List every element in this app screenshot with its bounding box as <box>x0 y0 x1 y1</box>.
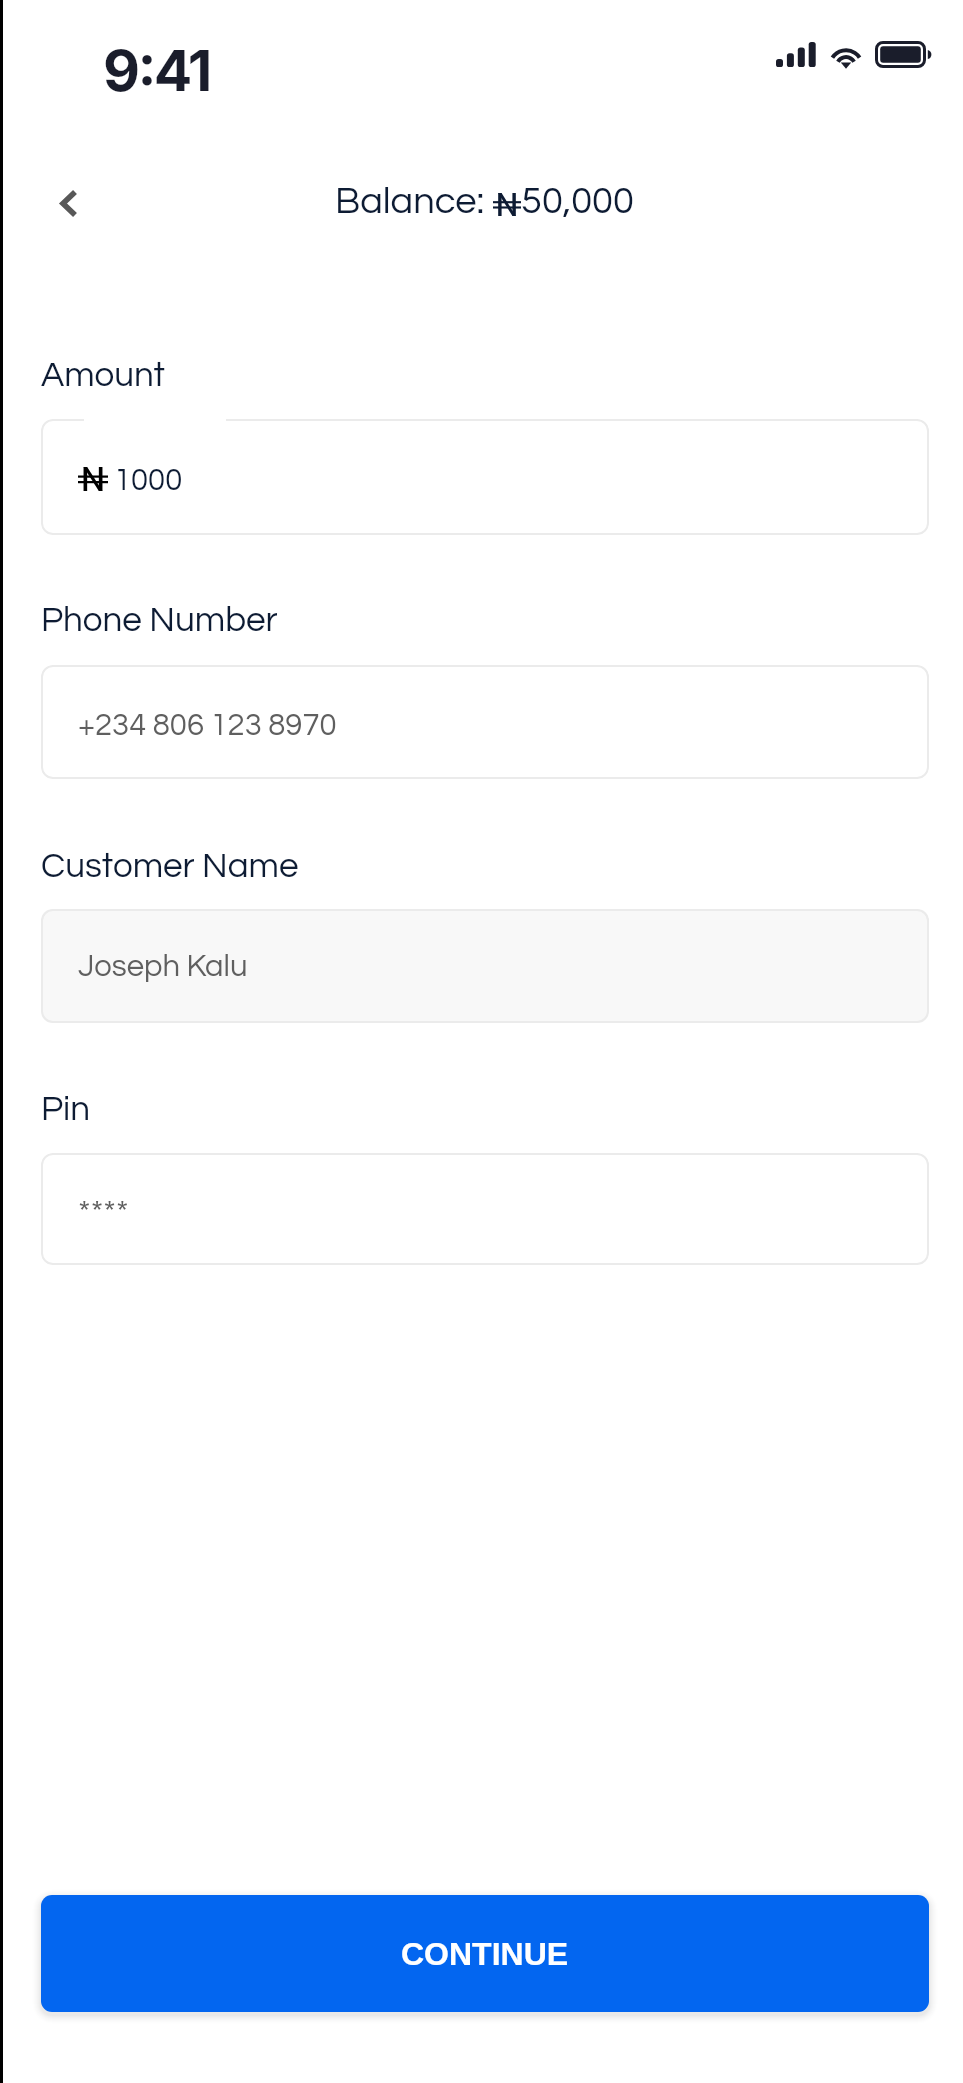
staticText: 1000 <box>114 465 183 497</box>
staticText: CONTINUE <box>401 1936 569 1972</box>
staticText: Balance: <box>335 182 493 221</box>
staticText: Joseph Kalu <box>78 951 248 983</box>
staticText: **** <box>78 1195 129 1230</box>
button[interactable]: **** <box>41 1153 929 1265</box>
staticText: Pin <box>41 1091 90 1127</box>
button[interactable]: +234 806 123 8970 <box>41 665 929 779</box>
staticText: Customer Name <box>41 848 299 884</box>
button[interactable]: 1000 <box>41 419 929 535</box>
button[interactable]: CONTINUE <box>41 1895 929 2012</box>
staticText: Phone Number <box>41 602 278 638</box>
staticText: 9:41 <box>103 36 210 105</box>
staticText: 50,000 <box>521 182 634 221</box>
button[interactable]: Back <box>29 163 109 243</box>
button[interactable]: Joseph Kalu <box>41 909 929 1023</box>
staticText: Amount <box>41 357 165 393</box>
staticText: +234 806 123 8970 <box>78 710 337 742</box>
